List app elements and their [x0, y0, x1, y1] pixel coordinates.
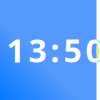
staticText: 13:50 [6, 29, 100, 71]
